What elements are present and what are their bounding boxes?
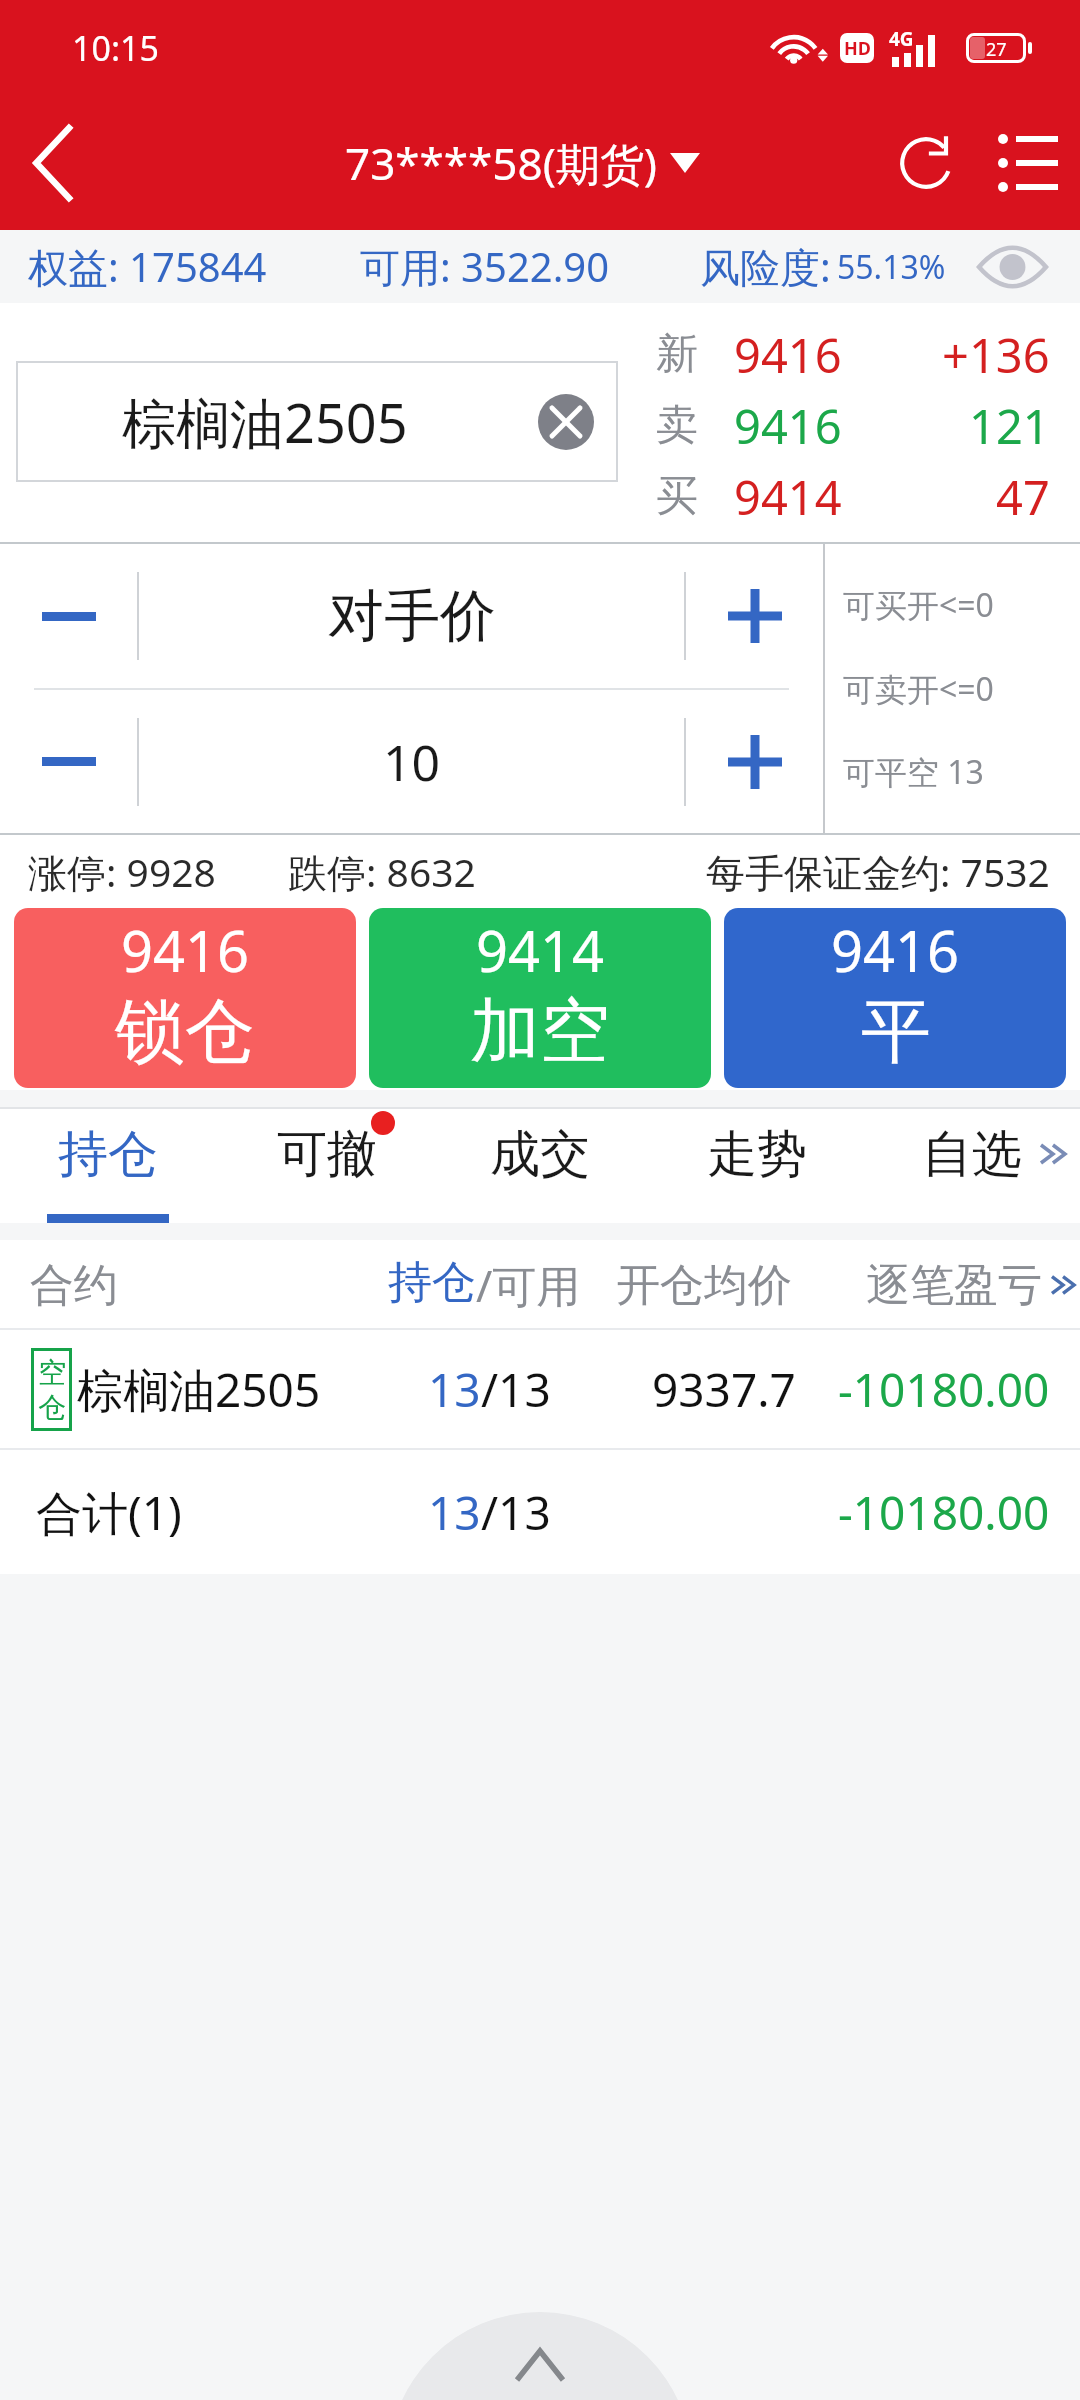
staticText: 合约	[30, 1258, 118, 1313]
button[interactable]: 9414	[369, 908, 711, 1088]
staticText: 棕榈油2505	[122, 385, 408, 459]
button[interactable]: Decrease	[0, 690, 137, 833]
button[interactable]: 可撤	[227, 1109, 427, 1223]
staticText: 9337.7	[652, 1358, 796, 1421]
staticText: -10180.00	[838, 1358, 1050, 1421]
other: Clear	[538, 394, 594, 450]
staticText: /13	[481, 1358, 551, 1421]
staticText: 10:15	[72, 25, 159, 71]
staticText: 涨停: 9928	[28, 845, 216, 898]
button[interactable]: Increase	[686, 690, 823, 833]
staticText: 可撤	[277, 1123, 377, 1186]
button[interactable]: 走势	[657, 1109, 857, 1223]
staticText: 对手价	[328, 581, 496, 652]
staticText: 可用: 3522.90	[360, 239, 610, 294]
staticText: 成交	[490, 1123, 590, 1186]
staticText: 权益: 175844	[28, 239, 267, 294]
staticText: 合计(1)	[36, 1481, 182, 1544]
staticText: 9416	[734, 394, 842, 458]
staticText: 卖	[656, 399, 698, 452]
button[interactable]: 合计(1)	[0, 1450, 1080, 1574]
staticText: 4G	[889, 26, 914, 52]
staticText: 9416	[734, 323, 842, 387]
staticText: /可用	[476, 1255, 581, 1315]
staticText: 13	[428, 1481, 481, 1544]
staticText: 仓	[38, 1390, 66, 1425]
staticText: 开仓均价	[616, 1258, 792, 1313]
staticText: 55.13%	[837, 245, 946, 289]
staticText: 平	[861, 988, 931, 1076]
button[interactable]: Increase	[686, 544, 823, 688]
button[interactable]: 棕榈油2505	[16, 361, 618, 482]
staticText: 新	[656, 328, 698, 381]
button[interactable]: Hide balance	[976, 230, 1049, 303]
staticText: 跌停: 8632	[288, 845, 476, 898]
staticText: 9414	[734, 465, 842, 529]
staticText: 空	[38, 1355, 66, 1390]
button[interactable]: Decrease	[0, 544, 137, 688]
staticText: 棕榈油2505	[77, 1358, 321, 1421]
button[interactable]: Refresh	[876, 96, 976, 230]
button[interactable]: 空	[0, 1330, 1080, 1448]
button[interactable]: 10	[139, 690, 684, 833]
button[interactable]: 73****58(期货)	[345, 133, 700, 193]
staticText: 走势	[707, 1123, 807, 1186]
staticText: 9416	[121, 912, 250, 988]
button[interactable]: 对手价	[139, 544, 684, 688]
button[interactable]: Back	[0, 96, 105, 230]
button[interactable]: Scroll to top	[388, 2312, 692, 2400]
staticText: 每手保证金约: 7532	[706, 845, 1050, 898]
staticText: 锁仓	[115, 988, 255, 1076]
staticText: 买	[656, 470, 698, 523]
staticText: /13	[481, 1481, 551, 1544]
staticText: 121	[969, 394, 1050, 458]
staticText: +136	[942, 323, 1050, 387]
staticText: 9414	[476, 912, 605, 988]
staticText: HD	[844, 36, 871, 61]
staticText: 47	[996, 465, 1050, 529]
button[interactable]: 9416	[724, 908, 1066, 1088]
staticText: 逐笔盈亏	[866, 1258, 1042, 1313]
staticText: 27	[986, 37, 1007, 59]
staticText: 13	[428, 1358, 481, 1421]
button[interactable]: Menu	[976, 96, 1080, 230]
staticText: 自选	[922, 1123, 1022, 1186]
staticText: -10180.00	[838, 1481, 1050, 1544]
staticText: 风险度:	[700, 239, 831, 294]
button[interactable]: 9416	[14, 908, 356, 1088]
staticText: 73****58(期货)	[345, 133, 658, 193]
staticText: 可买开<=0	[843, 583, 994, 627]
staticText: 持仓	[58, 1123, 158, 1186]
staticText: 持仓	[388, 1255, 476, 1310]
button[interactable]: 成交	[440, 1109, 640, 1223]
button[interactable]: More tabs	[1028, 1097, 1080, 1211]
button[interactable]: 自选	[872, 1109, 1072, 1223]
staticText: 加空	[470, 988, 610, 1076]
staticText: 10	[383, 728, 441, 796]
staticText: 可平空 13	[843, 750, 984, 794]
staticText: 9416	[831, 912, 960, 988]
staticText: 可卖开<=0	[843, 667, 994, 711]
button[interactable]: 持仓	[8, 1109, 208, 1223]
